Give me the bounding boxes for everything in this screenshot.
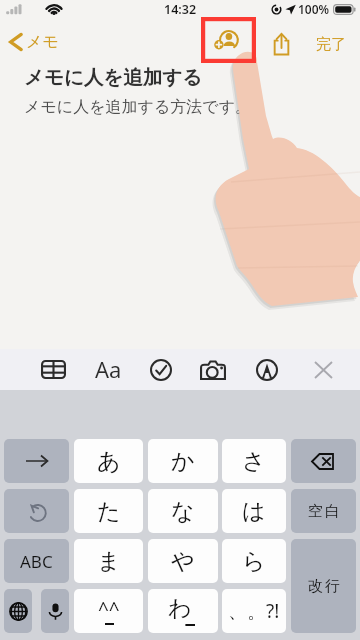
- staticText: 14:32: [164, 1, 197, 18]
- staticText: あ: [97, 447, 121, 476]
- staticText: ま: [97, 547, 121, 576]
- staticText: か: [171, 447, 195, 476]
- button[interactable]: Dictation: [41, 589, 69, 633]
- staticText: Aa: [95, 354, 122, 384]
- button[interactable]: 、。?!: [222, 589, 286, 633]
- button[interactable]: Camera: [194, 349, 232, 390]
- staticText: ^^: [98, 596, 120, 622]
- staticText: 、。?!: [228, 598, 280, 624]
- button[interactable]: さ: [222, 439, 286, 483]
- button[interactable]: Close keyboard: [304, 349, 342, 390]
- button[interactable]: Undo: [4, 489, 69, 533]
- button[interactable]: ^^: [74, 589, 143, 633]
- staticText: ら: [242, 547, 266, 576]
- button[interactable]: Change keyboard: [4, 589, 32, 633]
- staticText: 空白: [307, 502, 341, 521]
- staticText: た: [97, 497, 121, 526]
- staticText: は: [242, 497, 266, 526]
- button[interactable]: た: [74, 489, 143, 533]
- button[interactable]: Delete: [291, 439, 356, 483]
- button[interactable]: Aa: [90, 349, 126, 390]
- button[interactable]: か: [148, 439, 218, 483]
- button[interactable]: 空白: [291, 489, 356, 533]
- staticText: 完了: [316, 35, 346, 54]
- staticText: さ: [242, 447, 266, 476]
- staticText: メモに人を追加する方法です。: [24, 97, 251, 117]
- button[interactable]: Markup: [248, 349, 286, 390]
- button[interactable]: わ: [148, 589, 218, 633]
- staticText: わ: [168, 594, 192, 623]
- button[interactable]: Next candidate: [4, 439, 69, 483]
- button[interactable]: Table: [34, 349, 72, 390]
- button[interactable]: メモ: [8, 32, 59, 52]
- staticText: 改行: [307, 577, 341, 596]
- staticText: メモ: [26, 32, 59, 52]
- button[interactable]: Add person to note: [208, 24, 248, 64]
- staticText: ABC: [20, 550, 53, 573]
- button[interactable]: は: [222, 489, 286, 533]
- staticText: メモに人を追加する: [24, 65, 203, 90]
- button[interactable]: あ: [74, 439, 143, 483]
- staticText: 100%: [298, 1, 330, 17]
- button[interactable]: 完了: [316, 35, 346, 54]
- staticText: な: [171, 497, 195, 526]
- button[interactable]: な: [148, 489, 218, 533]
- button[interactable]: ABC: [4, 539, 69, 583]
- staticText: や: [171, 547, 195, 576]
- button[interactable]: Share: [261, 24, 301, 64]
- button[interactable]: ら: [222, 539, 286, 583]
- button[interactable]: 改行: [291, 539, 356, 633]
- button[interactable]: ま: [74, 539, 143, 583]
- button[interactable]: や: [148, 539, 218, 583]
- button[interactable]: Checklist: [142, 349, 180, 390]
